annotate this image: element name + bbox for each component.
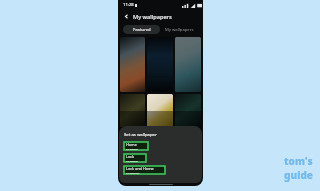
- button[interactable]: Back: [122, 12, 131, 21]
- staticText: Featured: [133, 27, 151, 33]
- staticText: Home screen: [126, 142, 146, 150]
- button[interactable]: [120, 37, 145, 92]
- button[interactable]: My wallpapers: [160, 25, 198, 34]
- button[interactable]: [147, 94, 173, 127]
- button[interactable]: [175, 37, 201, 92]
- button[interactable]: [175, 94, 201, 127]
- staticText: Set as wallpaper: [124, 132, 157, 138]
- button[interactable]: [120, 94, 145, 127]
- staticText: guide: [284, 168, 313, 182]
- button[interactable]: [147, 37, 173, 92]
- staticText: My wallpapers: [133, 13, 172, 21]
- staticText: 11:28: [123, 2, 134, 8]
- button[interactable]: Home screen: [124, 142, 148, 150]
- button[interactable]: Lock screen: [124, 154, 146, 162]
- staticText: My wallpapers: [165, 27, 194, 33]
- staticText: Lock screen: [126, 154, 144, 162]
- staticText: Lock and Home screens: [126, 166, 163, 174]
- button[interactable]: Featured: [123, 25, 160, 34]
- staticText: tom's: [284, 154, 313, 168]
- button[interactable]: Lock and Home screens: [124, 166, 165, 174]
